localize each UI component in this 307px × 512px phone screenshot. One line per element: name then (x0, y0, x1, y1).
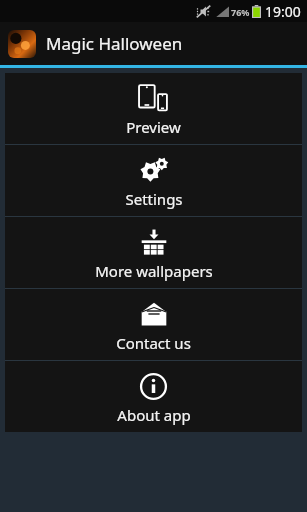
staticText: More wallpapers (95, 261, 213, 281)
staticText: Settings (125, 189, 183, 209)
other: Settings (139, 155, 169, 185)
other: Contact us (140, 299, 168, 329)
button[interactable]: About app (5, 361, 302, 432)
staticText: Preview (126, 117, 181, 137)
other: More wallpapers (140, 227, 168, 257)
button[interactable]: Contact us (5, 289, 302, 360)
button[interactable]: More wallpapers (5, 217, 302, 288)
button[interactable]: Settings (5, 145, 302, 216)
other: Preview (137, 83, 171, 113)
staticText: 19:00 (265, 2, 301, 21)
staticText: About app (117, 405, 191, 425)
staticText: 76% (231, 6, 250, 18)
button[interactable]: Preview (5, 73, 302, 144)
other: About app (140, 371, 167, 401)
staticText: Contact us (116, 333, 191, 353)
staticText: Magic Halloween (46, 32, 183, 55)
